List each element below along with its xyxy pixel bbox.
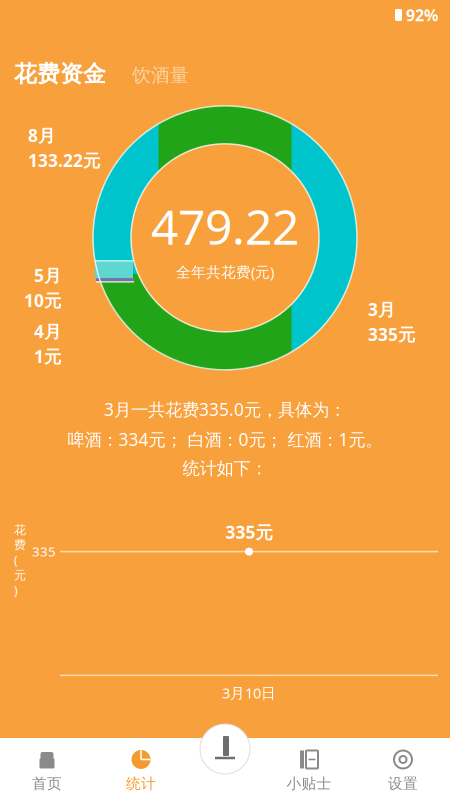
staticText: 首页	[32, 774, 62, 792]
button[interactable]: 首页	[0, 739, 94, 798]
button[interactable]: 饮酒量	[132, 64, 189, 87]
staticText: 统计	[126, 774, 156, 792]
button[interactable]: Add record	[200, 724, 250, 774]
staticText: 335	[32, 543, 56, 560]
staticText: 3月10日	[222, 683, 276, 703]
staticText: 133.22元	[28, 149, 100, 172]
staticText: 设置	[388, 774, 418, 792]
button[interactable]: 设置	[356, 739, 450, 798]
staticText: 花 费 ( 元 )	[14, 523, 26, 599]
staticText: 92%	[406, 4, 438, 26]
button[interactable]: 花费资金	[14, 60, 106, 88]
button[interactable]: 统计	[94, 739, 188, 798]
staticText: 3月	[368, 298, 395, 321]
staticText: 10元	[24, 289, 61, 312]
staticText: 啤酒：334元； 白酒：0元； 红酒：1元。	[67, 428, 382, 451]
button[interactable]: 小贴士	[262, 739, 356, 798]
staticText: 小贴士	[286, 774, 331, 792]
staticText: 3月一共花费335.0元，具体为：	[104, 398, 346, 421]
staticText: 全年共花费(元)	[176, 262, 274, 281]
staticText: 统计如下：	[182, 458, 267, 479]
staticText: 8月	[28, 124, 55, 147]
staticText: 1元	[34, 345, 61, 368]
staticText: 4月	[34, 320, 61, 343]
staticText: 5月	[34, 264, 61, 287]
staticText: 479.22	[151, 194, 299, 258]
staticText: 335元	[368, 323, 415, 346]
staticText: 335元	[225, 521, 272, 544]
staticText: 花费资金	[14, 60, 106, 88]
staticText: 饮酒量	[132, 64, 189, 87]
